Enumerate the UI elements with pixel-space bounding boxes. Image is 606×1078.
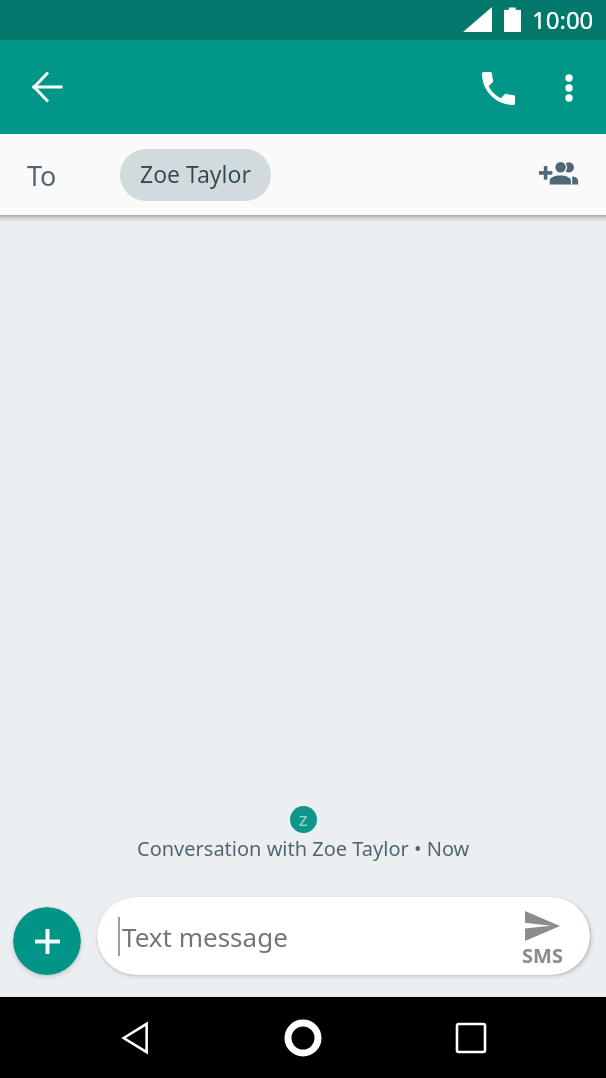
button[interactable]: Recents: [439, 1006, 503, 1070]
button[interactable]: Text message: [97, 897, 590, 975]
button[interactable]: Zoe Taylor: [120, 149, 271, 201]
staticText: To: [27, 157, 57, 194]
staticText: Zoe Taylor: [140, 158, 251, 189]
button[interactable]: Add people: [532, 148, 584, 200]
button[interactable]: Add attachment: [13, 907, 81, 975]
button[interactable]: Call: [474, 64, 522, 112]
button[interactable]: Send SMS: [516, 907, 568, 969]
staticText: Conversation with Zoe Taylor • Now: [137, 835, 470, 862]
button[interactable]: Back: [23, 63, 71, 111]
staticText: 10:00: [532, 3, 594, 36]
button[interactable]: Home: [271, 1006, 335, 1070]
staticText: Text message: [122, 919, 288, 954]
button[interactable]: More options: [545, 64, 593, 112]
staticText: SMS: [522, 942, 563, 969]
button[interactable]: Back: [104, 1006, 168, 1070]
staticText: Z: [299, 810, 308, 830]
